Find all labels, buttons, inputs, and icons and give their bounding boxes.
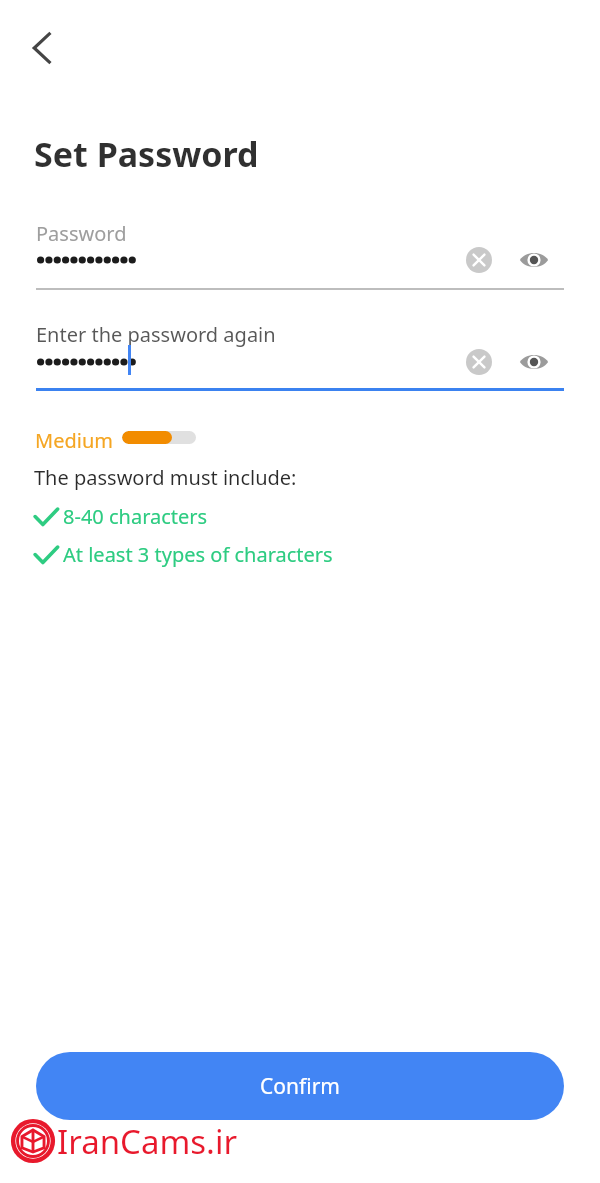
staticText: IranCams.ir <box>57 1119 238 1164</box>
button[interactable]: Clear <box>457 238 501 282</box>
staticText: Enter the password again <box>36 321 276 348</box>
staticText: The password must include: <box>34 464 297 491</box>
button[interactable]: Clear <box>457 340 501 384</box>
staticText: Set Password <box>34 131 259 177</box>
staticText: At least 3 types of characters <box>63 541 333 568</box>
button[interactable]: Show password <box>512 340 556 384</box>
staticText: Confirm <box>260 1072 340 1101</box>
staticText: Medium <box>35 427 113 454</box>
staticText: 8-40 characters <box>63 503 208 530</box>
button[interactable]: Show password <box>512 238 556 282</box>
button[interactable]: Back <box>14 20 70 76</box>
staticText: Password <box>36 220 127 247</box>
button[interactable]: Confirm <box>36 1052 564 1120</box>
